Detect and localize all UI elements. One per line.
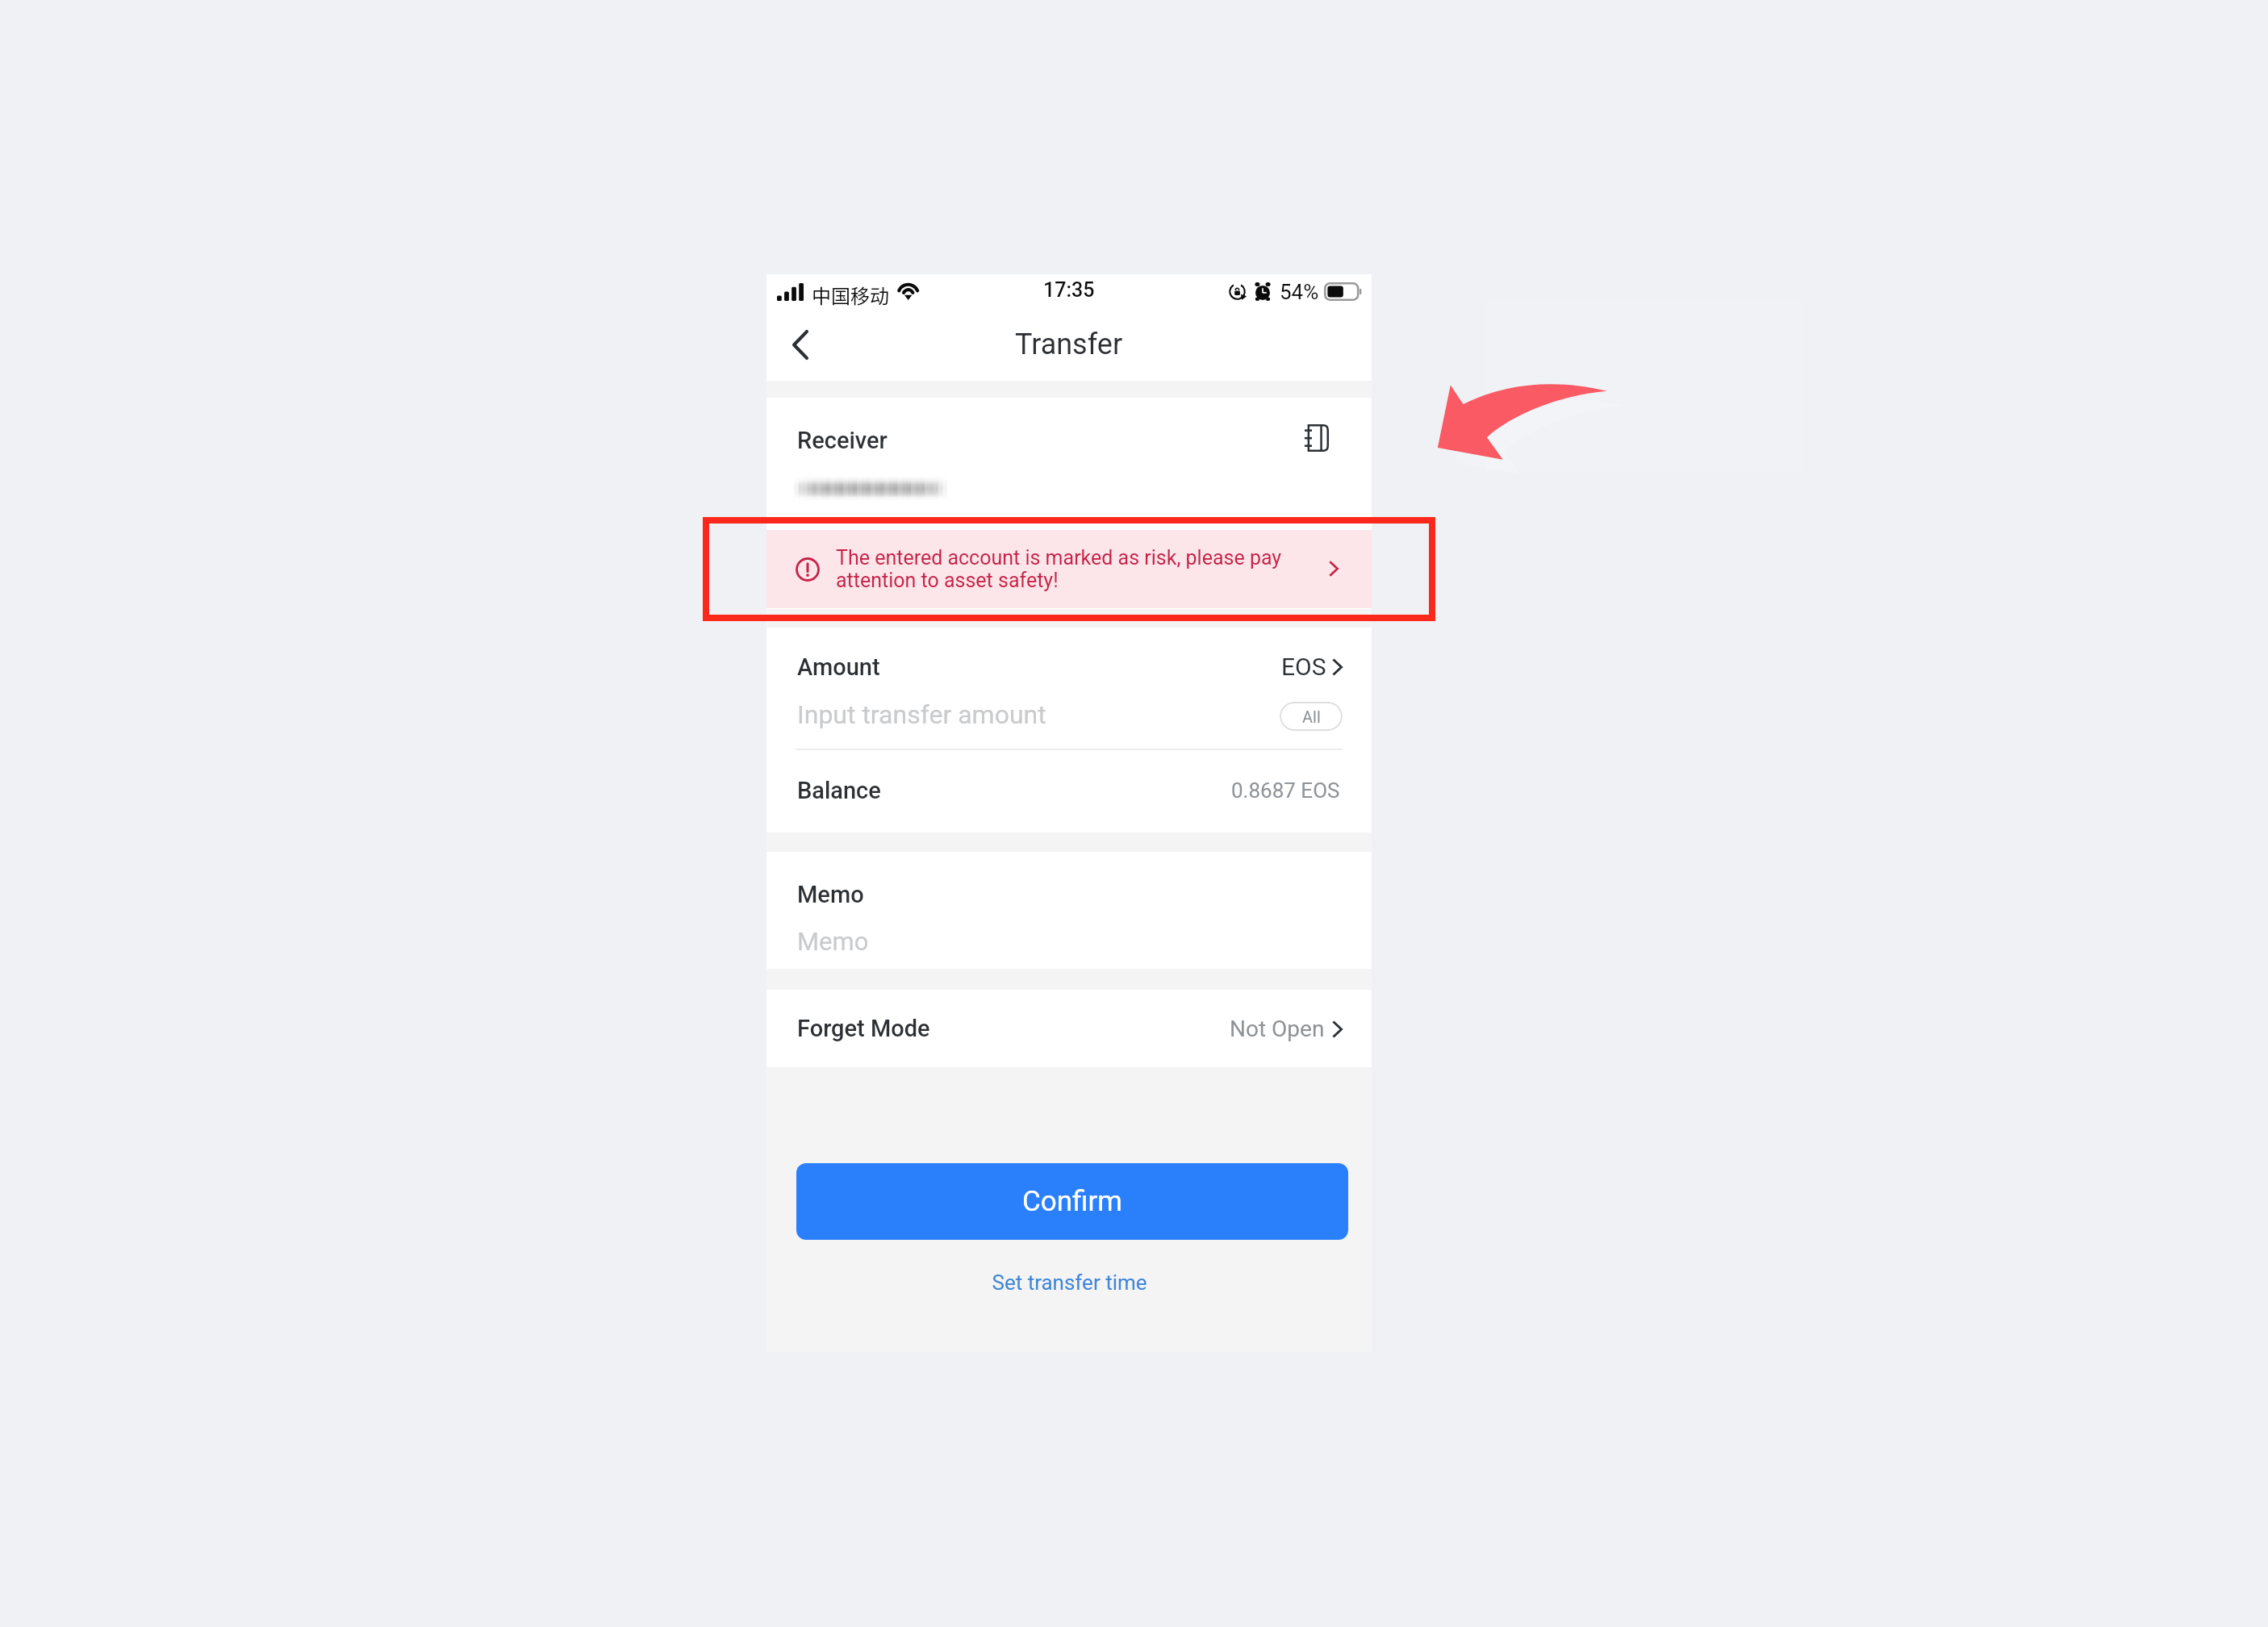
staticText: Confirm bbox=[1022, 1185, 1123, 1218]
staticText: Memo bbox=[797, 881, 864, 908]
staticText: 中国移动 bbox=[812, 281, 889, 309]
staticText: Transfer bbox=[1015, 327, 1123, 361]
button[interactable]: Back bbox=[776, 320, 825, 369]
staticText: 54% bbox=[1280, 280, 1319, 304]
button[interactable]: Memo bbox=[766, 920, 1372, 964]
staticText: Amount bbox=[797, 653, 880, 681]
button[interactable]: Confirm bbox=[796, 1163, 1348, 1240]
button[interactable]: Amount bbox=[766, 628, 1372, 692]
button[interactable]: All bbox=[1280, 702, 1343, 731]
button[interactable]: Choose from address book bbox=[1296, 417, 1338, 459]
staticText: Balance bbox=[797, 777, 881, 804]
staticText: Forget Mode bbox=[797, 1015, 930, 1042]
staticText: 0.8687 EOS bbox=[1231, 778, 1340, 803]
staticText: Input transfer amount bbox=[797, 699, 1046, 730]
staticText: Not Open bbox=[1230, 1016, 1325, 1042]
button[interactable]: Set transfer time bbox=[977, 1263, 1162, 1302]
staticText: Set transfer time bbox=[992, 1270, 1147, 1295]
staticText: Receiver bbox=[797, 427, 888, 454]
staticText: Memo bbox=[797, 927, 869, 956]
button[interactable]: Forget Mode bbox=[766, 990, 1372, 1067]
button[interactable]: The entered account is marked as risk, p… bbox=[766, 530, 1372, 608]
staticText: EOS bbox=[1281, 653, 1326, 681]
staticText: 17:35 bbox=[1043, 278, 1095, 302]
staticText: All bbox=[1302, 707, 1321, 726]
staticText: The entered account is marked as risk, p… bbox=[836, 546, 1302, 592]
